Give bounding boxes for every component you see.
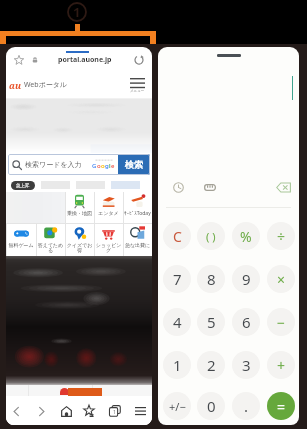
button[interactable]: 乗換・地図 [65, 192, 94, 223]
staticText: portal.auone.jp [58, 55, 112, 65]
button[interactable]: = [267, 392, 295, 420]
button[interactable]: ( ) [197, 222, 225, 250]
button[interactable]: 4 [163, 308, 191, 336]
staticText: 無料ゲーム [6, 242, 36, 248]
button[interactable]: Home [56, 401, 76, 421]
button[interactable]: ｻｰﾋﾞｽToday [123, 192, 152, 223]
staticText: 乗換・地図 [65, 210, 94, 216]
staticText: ÷ [277, 227, 286, 246]
button[interactable]: 7 [163, 265, 191, 293]
staticText: G [92, 162, 97, 170]
staticText: + [277, 356, 286, 375]
staticText: o [101, 162, 105, 170]
staticText: 0 [207, 396, 216, 416]
button[interactable]: 1 [163, 351, 191, 379]
staticText: % [240, 227, 252, 246]
staticText: +/− [169, 399, 186, 414]
button[interactable]: エンタメ [94, 192, 123, 223]
button[interactable]: 5 [197, 308, 225, 336]
button[interactable]: Keyboard [201, 178, 219, 196]
staticText: クイズでお得 [65, 242, 94, 254]
staticText: g [105, 162, 109, 170]
staticText: 6 [242, 312, 251, 332]
button[interactable]: − [267, 308, 295, 336]
staticText: 9 [242, 269, 251, 289]
staticText: エンタメ [94, 210, 123, 216]
staticText: l [109, 162, 111, 170]
button[interactable]: . [232, 392, 260, 420]
staticText: 7 [173, 269, 182, 289]
button[interactable]: History [169, 178, 187, 196]
button[interactable]: 検索 [118, 154, 150, 175]
staticText: × [277, 270, 286, 289]
button[interactable]: 急な出費に [123, 224, 152, 256]
button[interactable]: Site information [29, 54, 41, 66]
staticText: − [277, 313, 286, 332]
button[interactable]: +/− [163, 392, 191, 420]
button[interactable]: % [232, 222, 260, 250]
staticText: 答えてためる [36, 242, 65, 254]
button[interactable]: ÷ [267, 222, 295, 250]
staticText: 1 [113, 409, 116, 416]
staticText: 1 [73, 3, 81, 21]
staticText: 8 [207, 269, 216, 289]
staticText: 検索ワードを入力 [25, 160, 82, 169]
staticText: 4 [173, 312, 182, 332]
staticText: 急な出費に [123, 242, 152, 248]
button[interactable]: + [267, 351, 295, 379]
staticText: . [244, 396, 249, 416]
button[interactable]: Menu [130, 401, 150, 421]
button[interactable]: Reload page [130, 51, 148, 69]
button[interactable]: 3 [232, 351, 260, 379]
button[interactable]: × [267, 265, 295, 293]
staticText: = [277, 397, 286, 416]
button[interactable]: 6 [232, 308, 260, 336]
button[interactable]: 答えてためる [36, 224, 65, 256]
button[interactable]: Backspace [274, 178, 292, 196]
staticText: 3 [242, 355, 251, 375]
staticText: au [9, 79, 22, 91]
staticText: ショッピング [94, 242, 123, 254]
button[interactable]: Tabs [105, 401, 125, 421]
staticText: o [97, 162, 101, 170]
staticText: C [173, 227, 182, 246]
staticText: ( ) [206, 229, 216, 244]
button[interactable]: 0 [197, 392, 225, 420]
staticText: メニュー [130, 89, 145, 93]
button[interactable]: 急上昇 [11, 181, 35, 190]
button[interactable]: 検索ワードを入力 [8, 154, 118, 175]
staticText: 検索 [125, 159, 143, 170]
button[interactable]: Forward [31, 401, 51, 421]
button[interactable]: Menu [130, 78, 145, 93]
button[interactable]: 無料ゲーム [6, 224, 36, 256]
button[interactable]: クイズでお得 [65, 224, 94, 256]
button[interactable]: ショッピング [94, 224, 123, 256]
staticText: 2 [207, 355, 216, 375]
button[interactable]: C [163, 222, 191, 250]
button[interactable]: 2 [197, 351, 225, 379]
staticText: 急上昇 [16, 183, 30, 189]
button[interactable]: Bookmarks [79, 401, 99, 421]
staticText: Webポータル [24, 80, 68, 90]
button[interactable]: Back [6, 401, 26, 421]
staticText: 5 [207, 312, 216, 332]
staticText: 1 [173, 355, 182, 375]
button[interactable]: 9 [232, 265, 260, 293]
button[interactable]: 8 [197, 265, 225, 293]
staticText: ｻｰﾋﾞｽToday [123, 210, 152, 217]
button[interactable]: Bookmark [11, 52, 27, 68]
staticText: e [111, 162, 115, 170]
